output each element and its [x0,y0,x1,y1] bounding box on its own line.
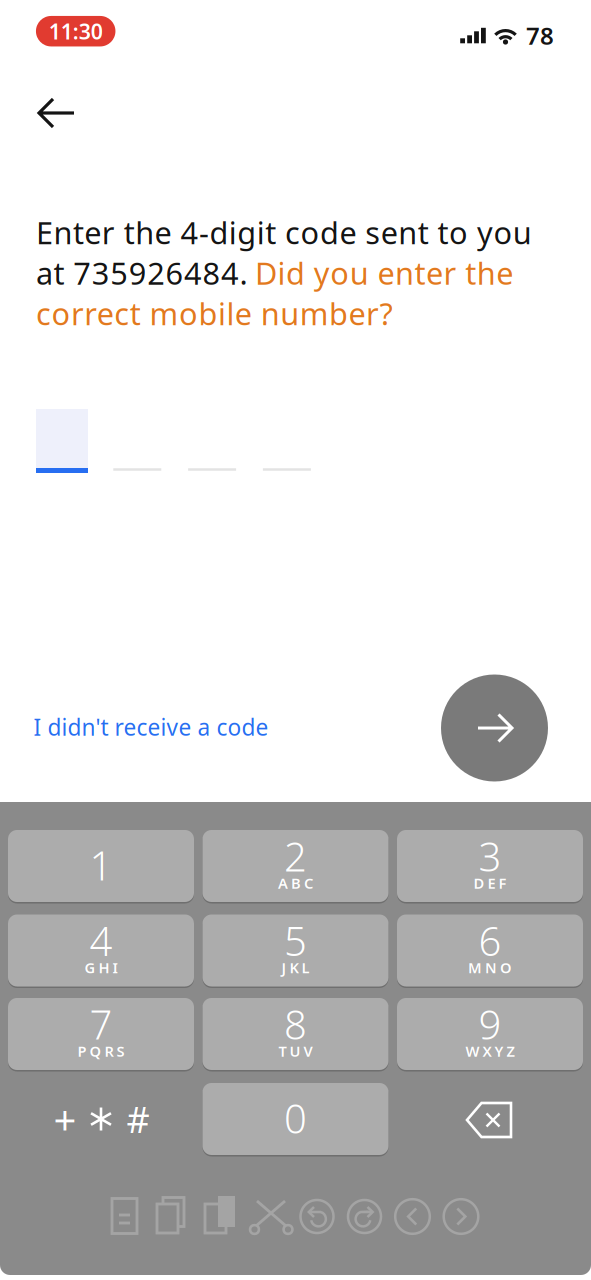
button[interactable]: 4 [8,913,194,987]
button[interactable]: Undo [293,1188,341,1244]
button[interactable]: 9 [397,997,583,1071]
button[interactable]: Copy [148,1188,196,1244]
button[interactable]: 2 [202,829,388,903]
staticText: 7 [89,997,112,1050]
staticText: correct mobile number? [36,293,392,334]
button[interactable]: Verification code entry [36,409,311,473]
staticText: + [53,1092,76,1145]
button[interactable]: 6 [397,913,583,987]
staticText: 3 [478,829,501,882]
staticText: ABC [278,873,313,893]
button[interactable]: Redo [340,1188,388,1244]
button[interactable]: 1 [8,829,194,903]
staticText: PQRS [77,1041,124,1061]
button[interactable]: 0 [202,1082,388,1156]
staticText: MNO [468,958,512,977]
button[interactable]: 8 [202,997,388,1071]
staticText: 2 [284,829,307,882]
staticText: 0 [284,1091,307,1144]
button[interactable]: Next [441,674,548,781]
staticText: Enter the 4-digit code sent to you [36,212,532,253]
staticText: I didn't receive a code [33,712,268,742]
button[interactable]: Previous [388,1188,436,1244]
staticText: 9 [478,997,501,1050]
staticText: JKL [281,958,309,977]
staticText: DEF [473,873,506,893]
button[interactable]: Notes [100,1188,148,1244]
staticText: GHI [84,958,117,977]
staticText: TUV [278,1041,312,1061]
staticText: Did you enter the [255,252,513,293]
staticText: 5 [284,914,307,967]
staticText: 8 [284,997,307,1050]
staticText: 78 [526,20,554,51]
button[interactable]: 7 [8,997,194,1071]
button[interactable]: Delete [397,1083,583,1155]
button[interactable]: Paste [196,1188,244,1244]
staticText: at 735926484. [36,252,247,293]
staticText: WXYZ [465,1041,514,1061]
staticText: 11:30 [49,17,103,45]
button[interactable]: Symbols [8,1082,194,1156]
staticText: # [126,1095,149,1143]
button[interactable]: Cut [246,1188,294,1244]
staticText: 1 [89,838,112,891]
button[interactable]: I didn't receive a code [33,712,268,742]
button[interactable]: 5 [202,913,388,987]
button[interactable]: Next [437,1188,485,1244]
button[interactable]: Back [37,91,81,135]
button[interactable]: 3 [397,829,583,903]
staticText: 4 [89,914,112,967]
staticText: 6 [478,914,501,967]
